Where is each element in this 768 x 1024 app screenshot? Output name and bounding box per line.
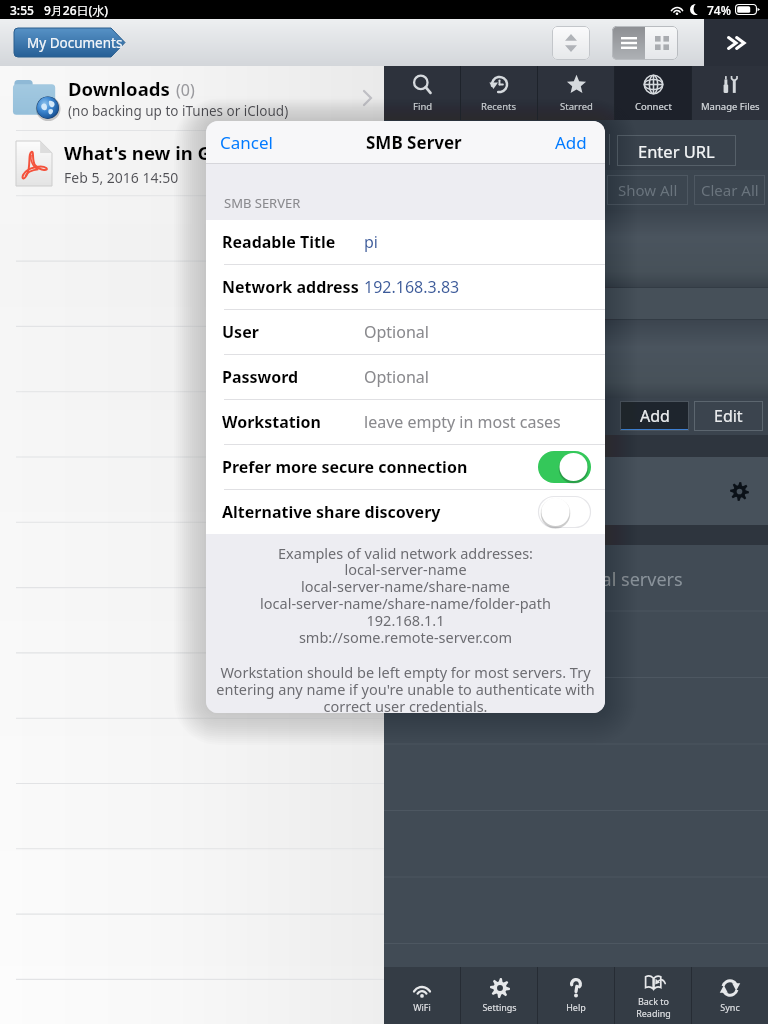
staticText: WiFi (413, 1001, 431, 1013)
staticText: Starred (560, 100, 593, 113)
staticText: Connect (635, 100, 672, 113)
button[interactable]: More (712, 19, 760, 66)
staticText: Sync (720, 1001, 740, 1013)
staticText: User (222, 321, 259, 343)
button[interactable]: WiFi (384, 967, 460, 1024)
button[interactable]: Sort (552, 26, 590, 60)
staticText: Prefer more secure connection (222, 456, 468, 478)
staticText: Recents (481, 100, 517, 113)
button[interactable]: Downloads (0, 66, 384, 130)
staticText: Optional (364, 366, 429, 388)
staticText: 3:55 (10, 2, 34, 18)
staticText: Manage Files (701, 100, 760, 113)
staticText: Workstation (222, 411, 321, 433)
button[interactable]: Workstation (206, 400, 605, 444)
button[interactable]: Find (384, 66, 460, 120)
button[interactable]: Alternative share discovery (206, 490, 605, 534)
staticText: pi (364, 231, 378, 253)
button[interactable]: Cancel (220, 131, 273, 154)
staticText: Optional (364, 321, 429, 343)
staticText: Add (555, 131, 587, 154)
staticText: Network address (222, 276, 359, 298)
staticText: Workstation should be left empty for mos… (213, 662, 598, 713)
button[interactable]: Enter URL (617, 135, 736, 166)
button[interactable]: Back to Reading (615, 967, 691, 1024)
button[interactable]: Clear All (694, 175, 765, 205)
staticText: Back to Reading (636, 995, 671, 1019)
staticText: Cancel (220, 131, 273, 154)
staticText: Edit (714, 405, 743, 427)
button[interactable]: Starred (538, 66, 614, 120)
staticText: leave empty in most cases (364, 411, 561, 433)
button[interactable]: Connect (615, 66, 691, 120)
button[interactable]: User (206, 310, 605, 354)
staticText: My Documents (27, 34, 123, 52)
button[interactable]: Sync (692, 967, 768, 1024)
button[interactable]: Add (620, 401, 689, 431)
staticText: Add (640, 405, 670, 427)
staticText: SMB Server (366, 131, 462, 154)
staticText: What's new in Google (64, 140, 263, 165)
button[interactable]: Help (538, 967, 614, 1024)
button[interactable]: Settings (461, 967, 537, 1024)
staticText: Settings (482, 1001, 517, 1013)
staticText: (0) (176, 79, 195, 101)
button[interactable]: Edit (694, 401, 763, 431)
staticText: Clear All (701, 180, 759, 200)
button[interactable]: List view (612, 26, 645, 60)
button[interactable]: What's new in Google (0, 131, 384, 195)
staticText: Feb 5, 2016 14:50 (64, 168, 179, 187)
button[interactable]: Show All (607, 175, 688, 205)
staticText: 9月26日(水) (44, 2, 109, 18)
staticText: Help (566, 1001, 586, 1013)
staticText: Downloads (68, 76, 170, 101)
staticText: 74% (707, 2, 731, 18)
button[interactable]: My Documents (14, 28, 125, 57)
button[interactable]: Readable Title (206, 220, 605, 264)
button[interactable]: Recents (461, 66, 537, 120)
button[interactable]: Manage Files (692, 66, 768, 120)
staticText: Alternative share discovery (222, 501, 441, 523)
staticText: (no backing up to iTunes or iCloud) (68, 102, 289, 120)
staticText: Password (222, 366, 299, 388)
staticText: 192.168.3.83 (364, 276, 460, 298)
staticText: SMB SERVER (224, 194, 301, 212)
button[interactable]: Password (206, 355, 605, 399)
staticText: Show all local servers (503, 567, 683, 592)
staticText: Readable Title (222, 231, 336, 253)
button[interactable]: Prefer more secure connection (206, 445, 605, 489)
staticText: Show All (618, 180, 678, 200)
staticText: Examples of valid network addresses: loc… (206, 543, 605, 647)
button[interactable]: Network address (206, 265, 605, 309)
staticText: Enter URL (638, 140, 715, 162)
button[interactable]: Add (555, 131, 587, 154)
button[interactable]: Settings (724, 476, 754, 506)
button[interactable]: Grid view (645, 26, 678, 60)
staticText: Find (413, 100, 433, 113)
